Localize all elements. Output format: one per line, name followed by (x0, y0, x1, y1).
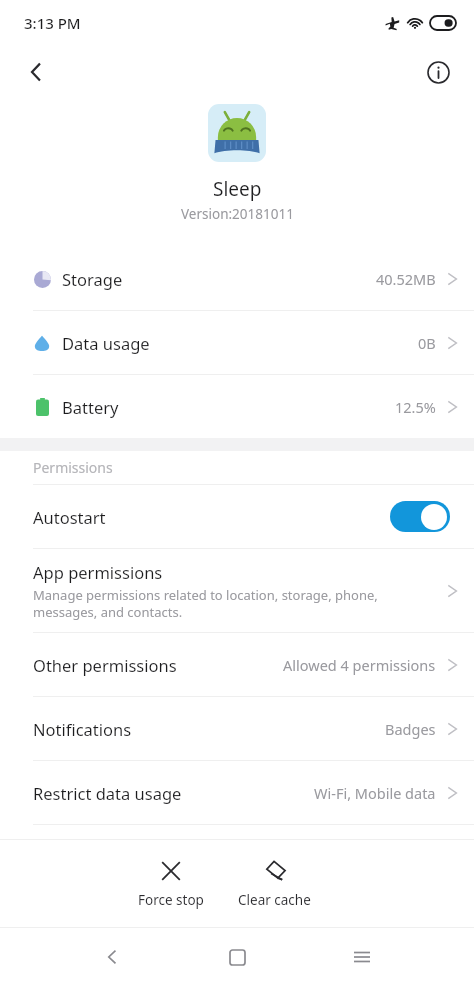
button[interactable]: Back (88, 933, 136, 981)
staticText: Restrict data usage (33, 782, 182, 804)
staticText: Storage (62, 268, 123, 290)
button[interactable]: Clear cache (228, 852, 321, 915)
button[interactable]: Autostart (0, 485, 474, 548)
staticText: Badges (385, 719, 436, 739)
button[interactable]: Back (14, 50, 58, 94)
button[interactable]: Recent apps (338, 933, 386, 981)
staticText: Manage permissions related to location, … (33, 586, 378, 621)
staticText: Force stop (138, 891, 204, 909)
button[interactable]: Restrict data usage (0, 761, 474, 824)
staticText: Version:20181011 (181, 205, 294, 223)
button[interactable]: App permissions (0, 549, 474, 632)
staticText: Autostart (33, 506, 106, 528)
staticText: Clear cache (238, 891, 311, 909)
staticText: 12.5% (395, 397, 436, 417)
staticText: Allowed 4 permissions (283, 655, 436, 675)
staticText: 0B (418, 333, 436, 353)
button[interactable]: Home (213, 933, 261, 981)
button[interactable]: Storage (0, 247, 474, 310)
staticText: Wi-Fi, Mobile data (314, 783, 436, 803)
staticText: App permissions (33, 561, 163, 583)
button[interactable]: Battery (0, 375, 474, 438)
staticText: 3:13 PM (24, 13, 81, 33)
staticText: Other permissions (33, 654, 177, 676)
button[interactable]: Other permissions (0, 633, 474, 696)
button[interactable]: App info (416, 50, 460, 94)
button[interactable]: Notifications (0, 697, 474, 760)
staticText: Data usage (62, 332, 150, 354)
staticText: Sleep (213, 176, 262, 202)
staticText: Battery (62, 396, 119, 418)
staticText: Permissions (33, 458, 113, 477)
button[interactable]: Force stop (128, 852, 214, 915)
staticText: Notifications (33, 718, 132, 740)
staticText: 40.52MB (376, 269, 436, 289)
button[interactable]: Data usage (0, 311, 474, 374)
